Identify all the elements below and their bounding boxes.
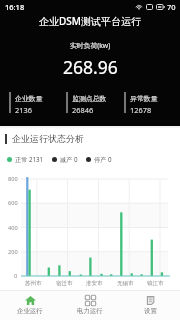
staticText: 268.96 <box>63 55 118 77</box>
staticText: 企业DSM测试平台运行 <box>39 14 141 28</box>
button[interactable]: 设置 <box>120 291 180 320</box>
staticText: 镇江市 <box>147 280 164 287</box>
staticText: 淮安市 <box>86 280 103 287</box>
staticText: 16:18 <box>5 2 25 12</box>
staticText: 电力运行 <box>77 307 103 315</box>
button[interactable]: 企业运行 <box>0 291 60 320</box>
staticText: 26846 <box>72 105 94 115</box>
staticText: 宿迁市 <box>56 280 73 287</box>
button[interactable]: 电力运行 <box>60 291 120 320</box>
staticText: 苏州市 <box>25 280 42 287</box>
staticText: 减产 0 <box>60 155 78 163</box>
staticText: 企业数量 <box>15 94 43 103</box>
staticText: 企业运行状态分析 <box>12 133 84 144</box>
staticText: 0 <box>14 272 18 280</box>
staticText: 600 <box>8 199 18 207</box>
staticText: 停产 0 <box>94 155 112 163</box>
staticText: 70 <box>167 2 176 12</box>
staticText: 无锡市 <box>117 280 134 287</box>
staticText: 实时负荷(kw) <box>70 41 111 50</box>
staticText: 800 <box>8 175 18 183</box>
staticText: 异常数量 <box>130 94 158 103</box>
staticText: 400 <box>8 224 18 232</box>
staticText: 200 <box>8 248 18 256</box>
staticText: 2136 <box>15 105 32 115</box>
staticText: 企业运行 <box>17 307 43 315</box>
staticText: 设置 <box>144 307 157 315</box>
staticText: 正常 2131 <box>15 155 44 163</box>
staticText: 12678 <box>130 105 152 115</box>
staticText: 监测点总数 <box>72 94 107 103</box>
